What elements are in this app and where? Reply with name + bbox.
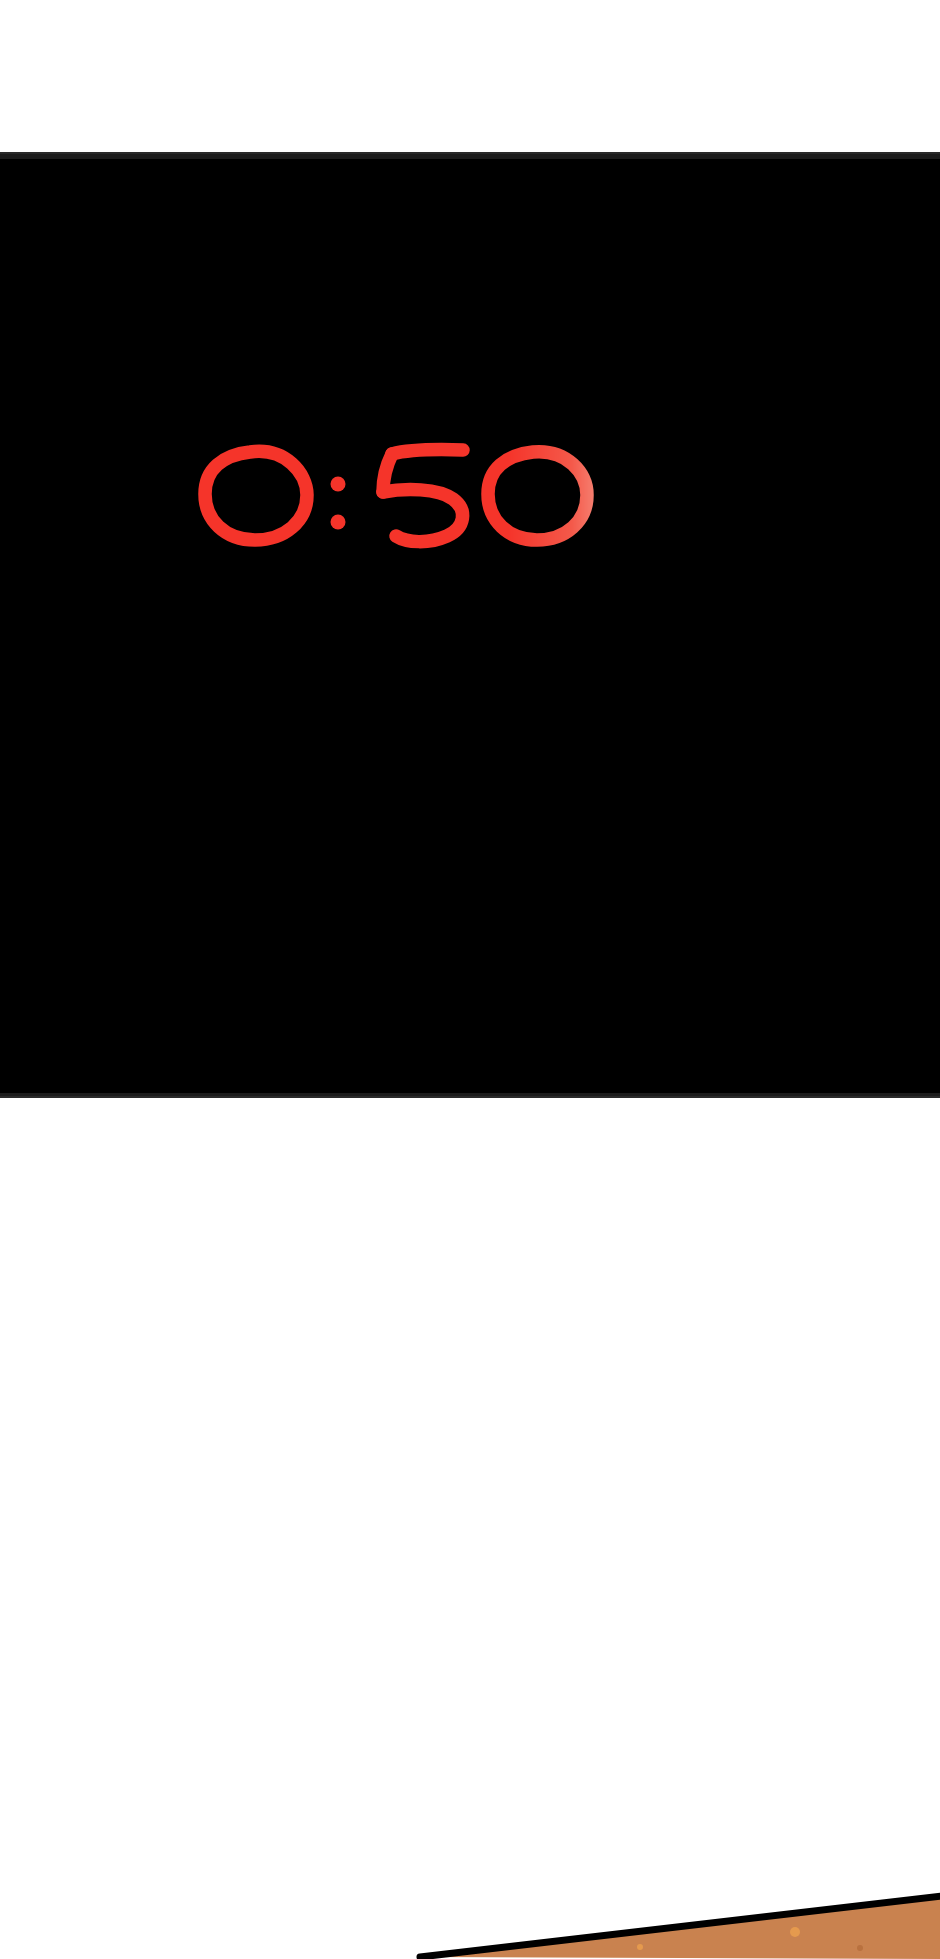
button[interactable]: Countdown timer showing 0:50 <box>0 0 940 1959</box>
